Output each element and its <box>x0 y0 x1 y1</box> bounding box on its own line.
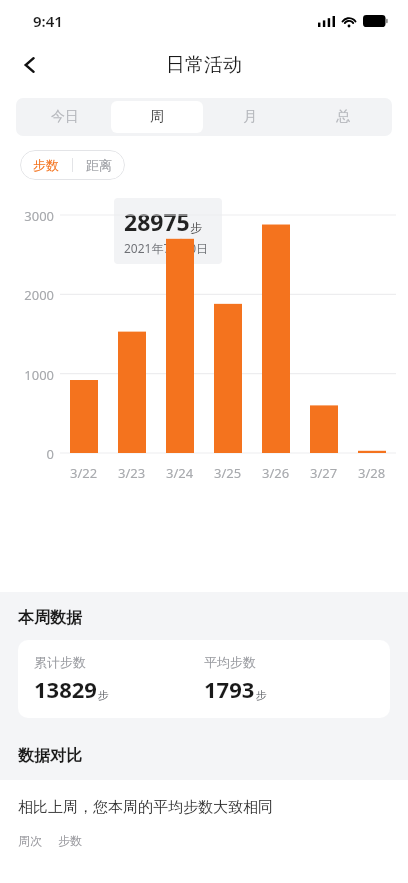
staticText: 3000 <box>8 207 54 225</box>
staticText: 步数 <box>58 833 82 848</box>
staticText: 3/26 <box>262 464 290 482</box>
button[interactable]: 月 <box>203 101 296 133</box>
staticText: 1793 <box>204 674 255 704</box>
button[interactable]: 步数 <box>20 150 72 180</box>
button[interactable]: 累计步数 <box>18 640 390 718</box>
staticText: 3/23 <box>118 464 146 482</box>
button[interactable]: 距离 <box>73 150 125 180</box>
staticText: 本周数据 <box>18 608 82 628</box>
staticText: 距离 <box>86 157 112 173</box>
staticText: 3/25 <box>214 464 242 482</box>
button[interactable]: 周 <box>111 101 203 133</box>
staticText: 3/27 <box>310 464 338 482</box>
staticText: 今日 <box>51 108 79 126</box>
staticText: 步 <box>98 688 109 702</box>
staticText: 3/24 <box>166 464 194 482</box>
button[interactable]: 总 <box>296 101 389 133</box>
staticText: 0 <box>8 445 54 463</box>
staticText: 月 <box>243 108 257 126</box>
staticText: 2000 <box>8 286 54 304</box>
staticText: 13829 <box>34 674 97 704</box>
staticText: 步 <box>256 688 267 702</box>
staticText: 相比上周，您本周的平均步数大致相同 <box>18 798 273 817</box>
staticText: 3/22 <box>70 464 98 482</box>
staticText: 周次 <box>18 833 42 848</box>
staticText: 周 <box>150 108 164 126</box>
staticText: 平均步数 <box>204 654 256 670</box>
staticText: 步 <box>190 220 202 235</box>
staticText: 数据对比 <box>18 746 82 766</box>
staticText: 总 <box>336 108 350 126</box>
staticText: 28975 <box>124 206 190 237</box>
staticText: 累计步数 <box>34 654 86 670</box>
staticText: 1000 <box>8 366 54 384</box>
button[interactable]: Back <box>8 43 52 87</box>
staticText: 9:41 <box>33 11 63 31</box>
staticText: 3/28 <box>358 464 386 482</box>
staticText: 日常活动 <box>166 53 242 77</box>
button[interactable]: 今日 <box>19 101 111 133</box>
staticText: 步数 <box>33 157 59 173</box>
staticText: 2021年7月20日 <box>124 240 209 256</box>
